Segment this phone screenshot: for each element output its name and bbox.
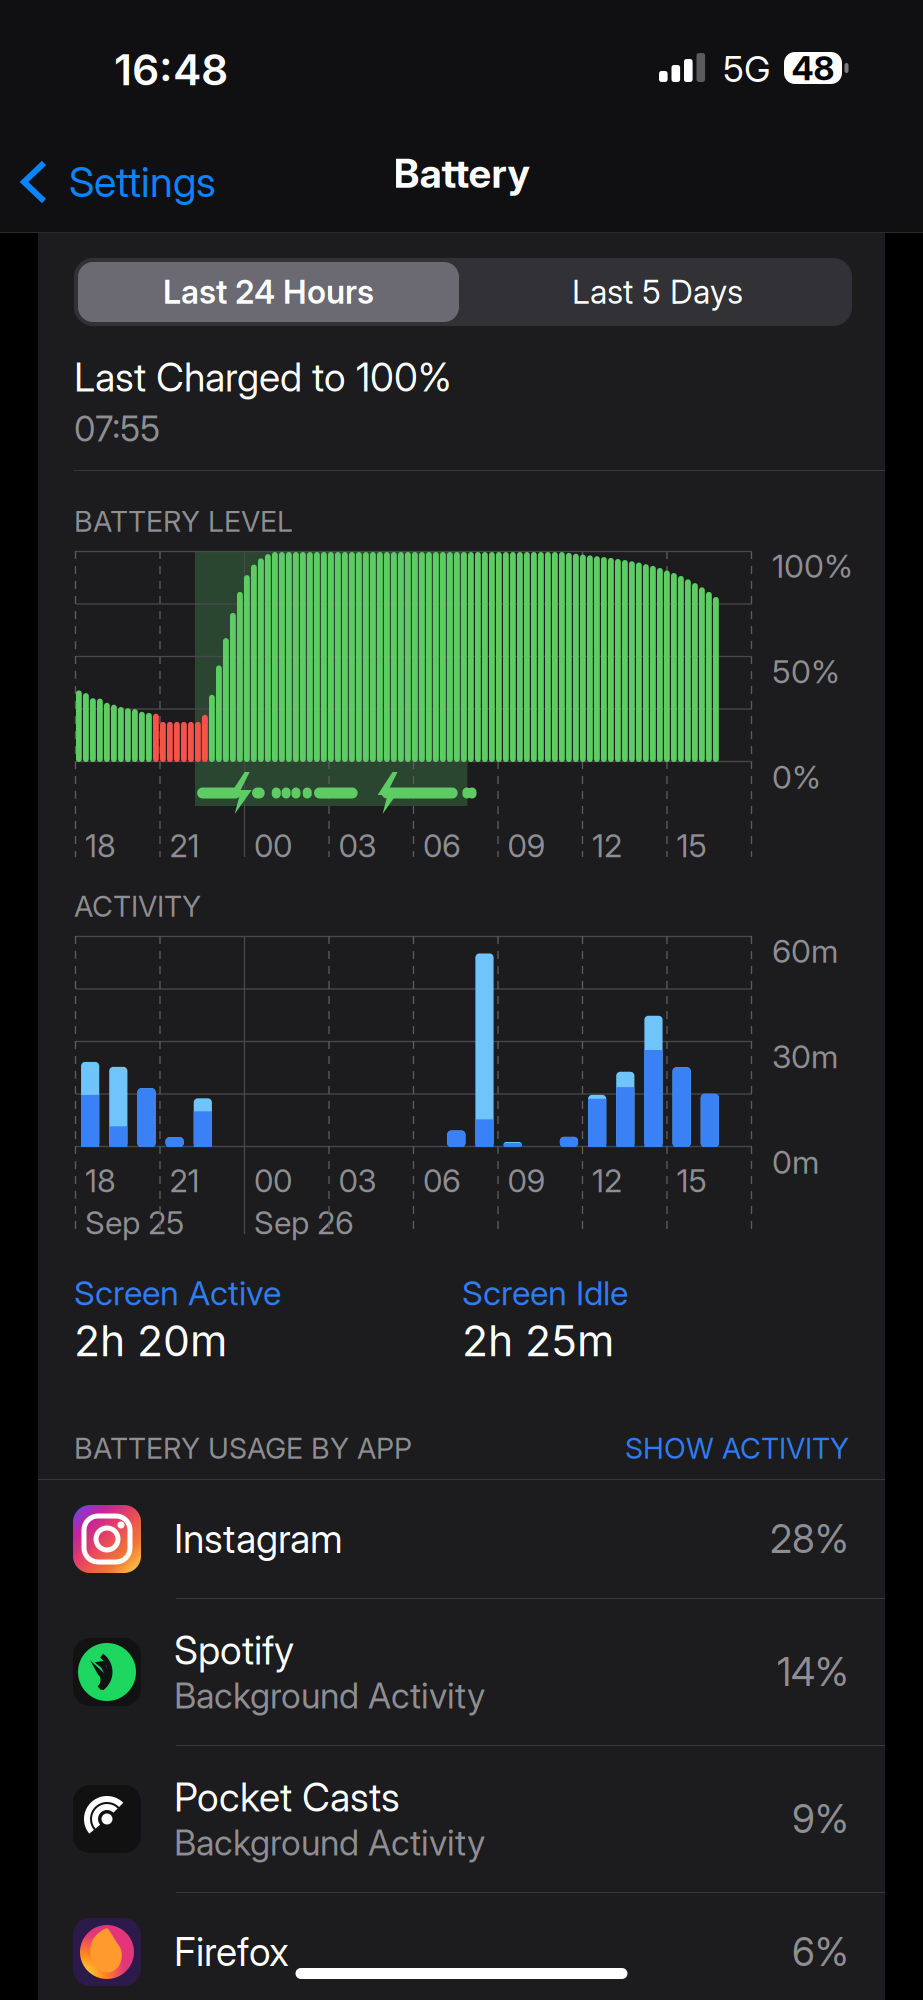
staticText: 2h 20m bbox=[74, 1315, 227, 1367]
staticText: 00 bbox=[254, 1162, 292, 1200]
staticText: 09 bbox=[507, 827, 545, 865]
staticText: 14% bbox=[777, 1649, 849, 1695]
staticText: 9% bbox=[792, 1796, 849, 1842]
staticText: 03 bbox=[338, 827, 376, 865]
staticText: Battery bbox=[393, 149, 529, 197]
staticText: 0m bbox=[772, 1143, 819, 1181]
staticText: 12 bbox=[592, 1162, 622, 1200]
staticText: 07:55 bbox=[74, 408, 160, 450]
staticText: 03 bbox=[338, 1162, 376, 1200]
staticText: 0% bbox=[772, 758, 821, 796]
staticText: 15 bbox=[676, 827, 706, 865]
staticText: Sep 26 bbox=[254, 1204, 354, 1242]
staticText: Background Activity bbox=[174, 1675, 485, 1717]
staticText: BATTERY USAGE BY APP bbox=[74, 1431, 412, 1466]
staticText: 16:48 bbox=[114, 44, 228, 96]
button[interactable]: Last 5 Days bbox=[463, 258, 852, 326]
staticText: Pocket Casts bbox=[174, 1774, 400, 1821]
staticText: Screen Active bbox=[74, 1273, 281, 1313]
staticText: 28% bbox=[770, 1516, 849, 1562]
staticText: 60m bbox=[772, 932, 838, 970]
staticText: BATTERY LEVEL bbox=[74, 504, 293, 539]
staticText: 18 bbox=[85, 827, 116, 865]
staticText: 5G bbox=[723, 47, 770, 91]
staticText: 6% bbox=[792, 1929, 849, 1975]
staticText: Instagram bbox=[174, 1516, 343, 1562]
staticText: Sep 25 bbox=[85, 1204, 184, 1242]
staticText: 100% bbox=[772, 547, 853, 585]
staticText: ACTIVITY bbox=[74, 889, 201, 924]
staticText: 09 bbox=[507, 1162, 545, 1200]
staticText: Spotify bbox=[174, 1627, 294, 1674]
button[interactable]: Pocket Casts bbox=[38, 1746, 885, 1892]
staticText: 00 bbox=[254, 827, 292, 865]
staticText: Background Activity bbox=[174, 1822, 485, 1864]
button[interactable]: Spotify bbox=[38, 1599, 885, 1745]
button[interactable]: Firefox bbox=[38, 1893, 885, 2000]
staticText: 15 bbox=[676, 1162, 706, 1200]
staticText: Last Charged to 100% bbox=[74, 354, 452, 401]
staticText: 06 bbox=[423, 827, 461, 865]
button[interactable]: Last 24 Hours bbox=[74, 258, 463, 326]
staticText: 18 bbox=[85, 1162, 116, 1200]
staticText: 06 bbox=[423, 1162, 461, 1200]
staticText: Last 24 Hours bbox=[163, 272, 374, 312]
staticText: Last 5 Days bbox=[572, 272, 743, 312]
button[interactable]: SHOW ACTIVITY bbox=[625, 1431, 849, 1466]
staticText: 2h 25m bbox=[462, 1315, 614, 1367]
staticText: 21 bbox=[169, 1162, 199, 1200]
staticText: Settings bbox=[69, 157, 216, 207]
button[interactable]: Instagram bbox=[38, 1480, 885, 1598]
staticText: 12 bbox=[592, 827, 622, 865]
staticText: 50% bbox=[772, 652, 840, 691]
staticText: 21 bbox=[169, 827, 199, 865]
staticText: Firefox bbox=[174, 1929, 289, 1975]
staticText: SHOW ACTIVITY bbox=[625, 1431, 849, 1466]
staticText: 30m bbox=[772, 1037, 838, 1076]
button[interactable]: Settings bbox=[21, 147, 281, 217]
staticText: 48 bbox=[791, 48, 834, 88]
staticText: Screen Idle bbox=[462, 1273, 628, 1313]
